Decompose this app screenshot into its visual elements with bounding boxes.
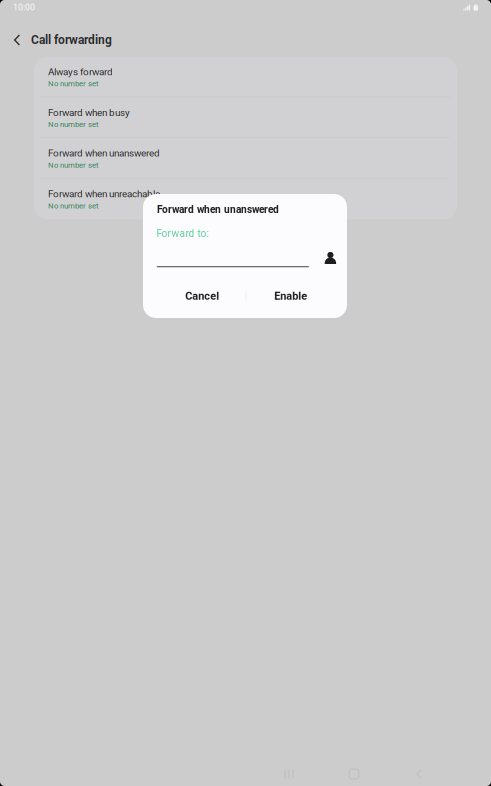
staticText: Forward when unreachable [48, 188, 160, 200]
staticText: Enable [274, 290, 307, 302]
staticText: Forward when unanswered [48, 147, 160, 159]
button[interactable]: Forward when busy [34, 98, 457, 138]
staticText: No number set [48, 160, 99, 170]
staticText: Always forward [48, 66, 113, 78]
staticText: No number set [48, 79, 99, 88]
staticText: Forward when unanswered [157, 203, 279, 215]
staticText: Forward when busy [48, 107, 130, 118]
button[interactable]: Always forward [34, 57, 457, 98]
staticText: Call forwarding [31, 33, 112, 47]
button[interactable]: Cancel [158, 283, 246, 309]
staticText: No number set [48, 201, 99, 210]
staticText: Cancel [185, 290, 219, 302]
button[interactable]: Forward when unanswered [34, 138, 457, 179]
staticText: 10:00 [13, 2, 35, 13]
button[interactable]: Forward when unreachable [34, 179, 457, 219]
button[interactable]: Choose contact [320, 248, 340, 268]
staticText: Forward to: [156, 227, 208, 239]
button[interactable]: Back [5, 27, 29, 53]
button[interactable]: Enable [246, 283, 335, 309]
staticText: No number set [48, 120, 99, 129]
